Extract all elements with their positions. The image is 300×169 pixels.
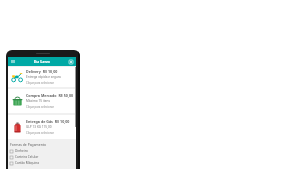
staticText: Formas de Pagamento: [10, 142, 47, 147]
button[interactable]: Dinheiro: [10, 149, 76, 153]
staticText: Dinheiro: [15, 149, 28, 153]
staticText: GLP 13 KG 115,00: [26, 125, 52, 129]
button[interactable]: Delivery R$ 10,00: [8, 67, 76, 87]
button[interactable]: Cartão Máquina: [10, 161, 76, 165]
staticText: Entrega de Gás R$ 10,00: [26, 119, 70, 124]
staticText: Entrega rápida e segura: [26, 75, 61, 79]
button[interactable]: Carteira Celular: [10, 155, 76, 159]
button[interactable]: Menu: [10, 59, 16, 65]
staticText: Carteira Celular: [15, 155, 39, 159]
staticText: Eu Levo: [34, 59, 50, 65]
staticText: Máximo 15 itens: [26, 99, 50, 103]
staticText: Delivery R$ 10,00: [26, 69, 58, 74]
button[interactable]: Compra Mercado R$ 50,00: [8, 89, 76, 113]
button[interactable]: Mensagens: [68, 59, 74, 65]
staticText: Clique para selecionar: [26, 105, 54, 109]
staticText: Clique para selecionar: [26, 81, 54, 85]
staticText: Compra Mercado R$ 50,00: [26, 93, 74, 98]
button[interactable]: Entrega de Gás R$ 10,00: [8, 115, 76, 139]
staticText: Cartão Máquina: [15, 161, 40, 165]
staticText: Clique para selecionar: [26, 131, 54, 135]
